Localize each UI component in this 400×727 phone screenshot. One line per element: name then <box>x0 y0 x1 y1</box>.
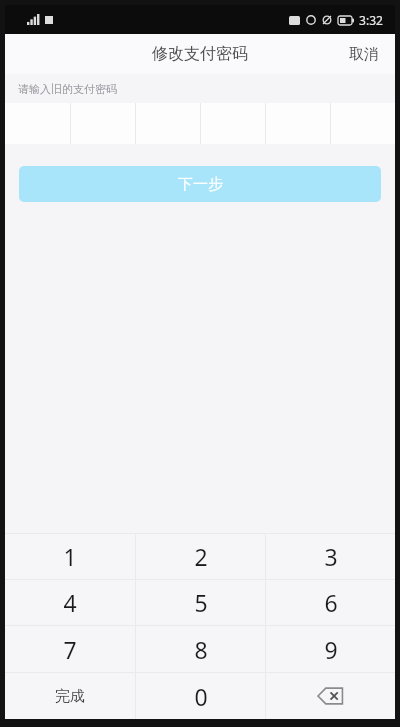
staticText: 修改支付密码 <box>152 44 248 64</box>
staticText: 2 <box>194 541 208 572</box>
staticText: 下一步 <box>178 175 223 194</box>
staticText: 3 <box>324 541 338 572</box>
staticText: 3:32 <box>359 12 383 28</box>
button[interactable]: 取消 <box>333 34 395 74</box>
button[interactable]: 下一步 <box>19 166 381 202</box>
staticText: 完成 <box>55 687 85 706</box>
button[interactable]: 7 <box>5 626 135 672</box>
staticText: 7 <box>63 634 77 665</box>
button[interactable]: 完成 <box>5 673 135 719</box>
staticText: 9 <box>324 634 338 665</box>
button[interactable]: 9 <box>266 626 395 672</box>
button[interactable]: 6 <box>266 580 395 625</box>
staticText: 1 <box>63 541 77 572</box>
staticText: 4 <box>63 587 77 618</box>
button[interactable]: 1 <box>5 534 135 579</box>
staticText: 取消 <box>349 45 379 64</box>
staticText: 8 <box>194 634 208 665</box>
staticText: 5 <box>194 587 208 618</box>
button[interactable]: Backspace <box>266 673 395 719</box>
button[interactable]: 0 <box>136 673 265 719</box>
staticText: 6 <box>324 587 338 618</box>
staticText: 0 <box>194 681 208 712</box>
button[interactable]: 5 <box>136 580 265 625</box>
button[interactable]: 4 <box>5 580 135 625</box>
button[interactable]: 3 <box>266 534 395 579</box>
button[interactable]: 2 <box>136 534 265 579</box>
button[interactable]: 8 <box>136 626 265 672</box>
staticText: 请输入旧的支付密码 <box>18 82 117 96</box>
